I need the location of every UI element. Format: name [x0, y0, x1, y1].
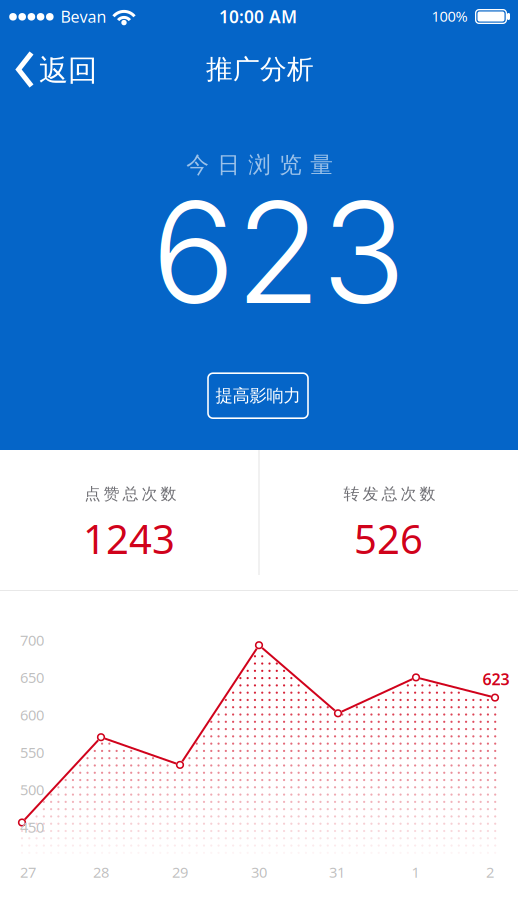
- staticText: 623: [482, 668, 509, 690]
- button[interactable]: 点 赞 总 次 数: [0, 449, 259, 590]
- staticText: 1: [411, 862, 419, 882]
- staticText: 转 发 总 次 数: [343, 484, 435, 504]
- button[interactable]: 返回: [16, 52, 97, 88]
- staticText: 推广分析: [206, 53, 314, 86]
- staticText: 27: [20, 862, 36, 882]
- staticText: 31: [329, 862, 345, 882]
- staticText: 返回: [39, 52, 97, 88]
- staticText: 623: [151, 168, 405, 336]
- staticText: 100%: [431, 6, 467, 26]
- staticText: Bevan: [60, 6, 106, 27]
- staticText: 28: [93, 862, 109, 882]
- staticText: 500: [20, 780, 44, 799]
- staticText: 650: [20, 668, 44, 687]
- staticText: 今 日 浏 览 量: [186, 151, 333, 179]
- staticText: 30: [251, 862, 267, 882]
- button[interactable]: 提高影响力: [208, 373, 308, 418]
- staticText: 10:00 AM: [219, 5, 297, 28]
- staticText: 450: [20, 817, 44, 837]
- staticText: 1243: [83, 512, 175, 565]
- staticText: 2: [486, 862, 494, 882]
- staticText: 600: [20, 705, 44, 725]
- staticText: 29: [172, 862, 188, 882]
- button[interactable]: 转 发 总 次 数: [259, 449, 518, 590]
- staticText: 550: [20, 742, 44, 762]
- staticText: 提高影响力: [215, 385, 300, 406]
- staticText: 526: [354, 512, 423, 565]
- staticText: 点 赞 总 次 数: [84, 484, 176, 504]
- staticText: 700: [20, 630, 44, 650]
